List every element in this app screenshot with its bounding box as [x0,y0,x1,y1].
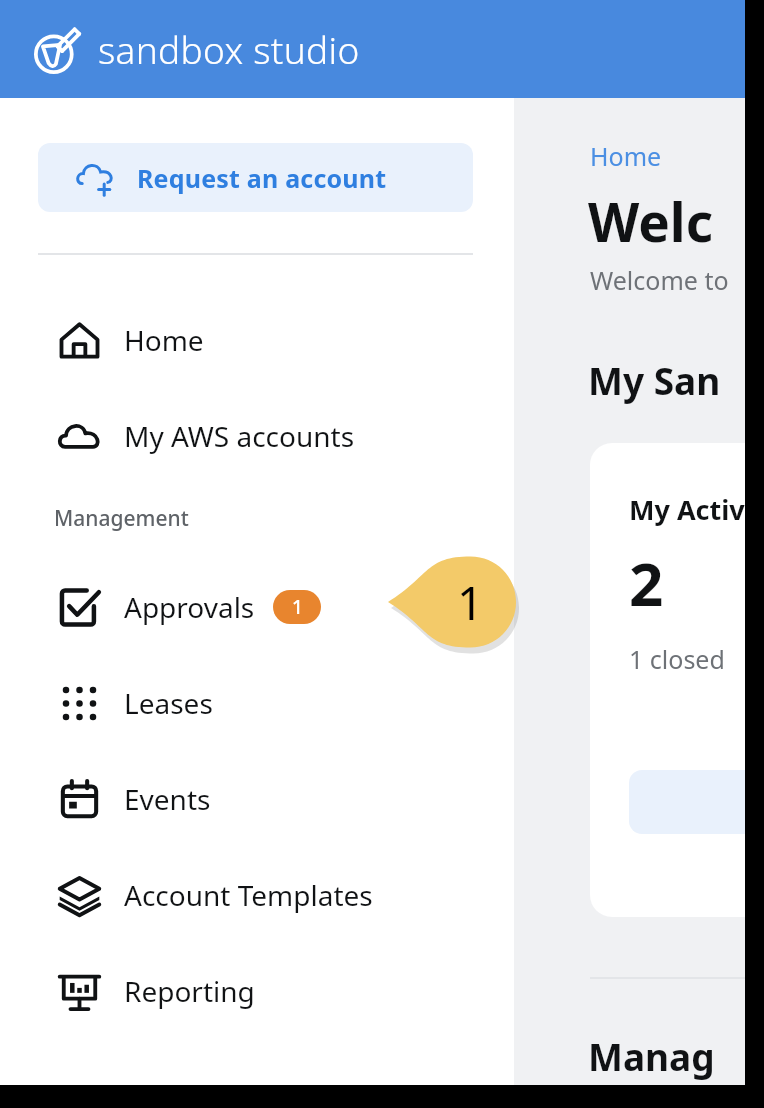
staticText: My San [588,355,721,405]
button[interactable]: Request an account [38,143,473,212]
staticText: Events [124,780,211,818]
staticText: 1 [292,594,303,620]
button[interactable]: Home [0,292,514,388]
button[interactable]: My AWS accounts [0,388,514,484]
staticText: sandbox studio [98,24,360,74]
other: sandbox studio logo [33,23,85,75]
button[interactable]: Events [0,751,514,847]
staticText: Leases [124,684,213,722]
staticText: Welcome to [590,263,729,297]
staticText: Approvals [124,588,255,626]
button[interactable]: Leases [0,655,514,751]
button[interactable]: Approvals [0,559,514,655]
button[interactable]: Reporting [0,943,514,1039]
staticText: My AWS accounts [124,417,355,455]
staticText: My Activ [629,491,745,528]
button[interactable]: Home [590,139,662,173]
staticText: Welco [588,185,745,257]
staticText: Management [54,504,189,533]
staticText: Home [124,321,204,359]
button[interactable]: Account Templates [0,847,514,943]
staticText: Account Templates [124,876,373,914]
staticText: Reporting [124,972,255,1010]
staticText: Manag [588,1031,715,1081]
staticText: 1 [457,571,484,634]
staticText: 1 closed a [629,642,745,676]
staticText: Request an account [137,161,387,195]
staticText: 2 [629,542,664,624]
